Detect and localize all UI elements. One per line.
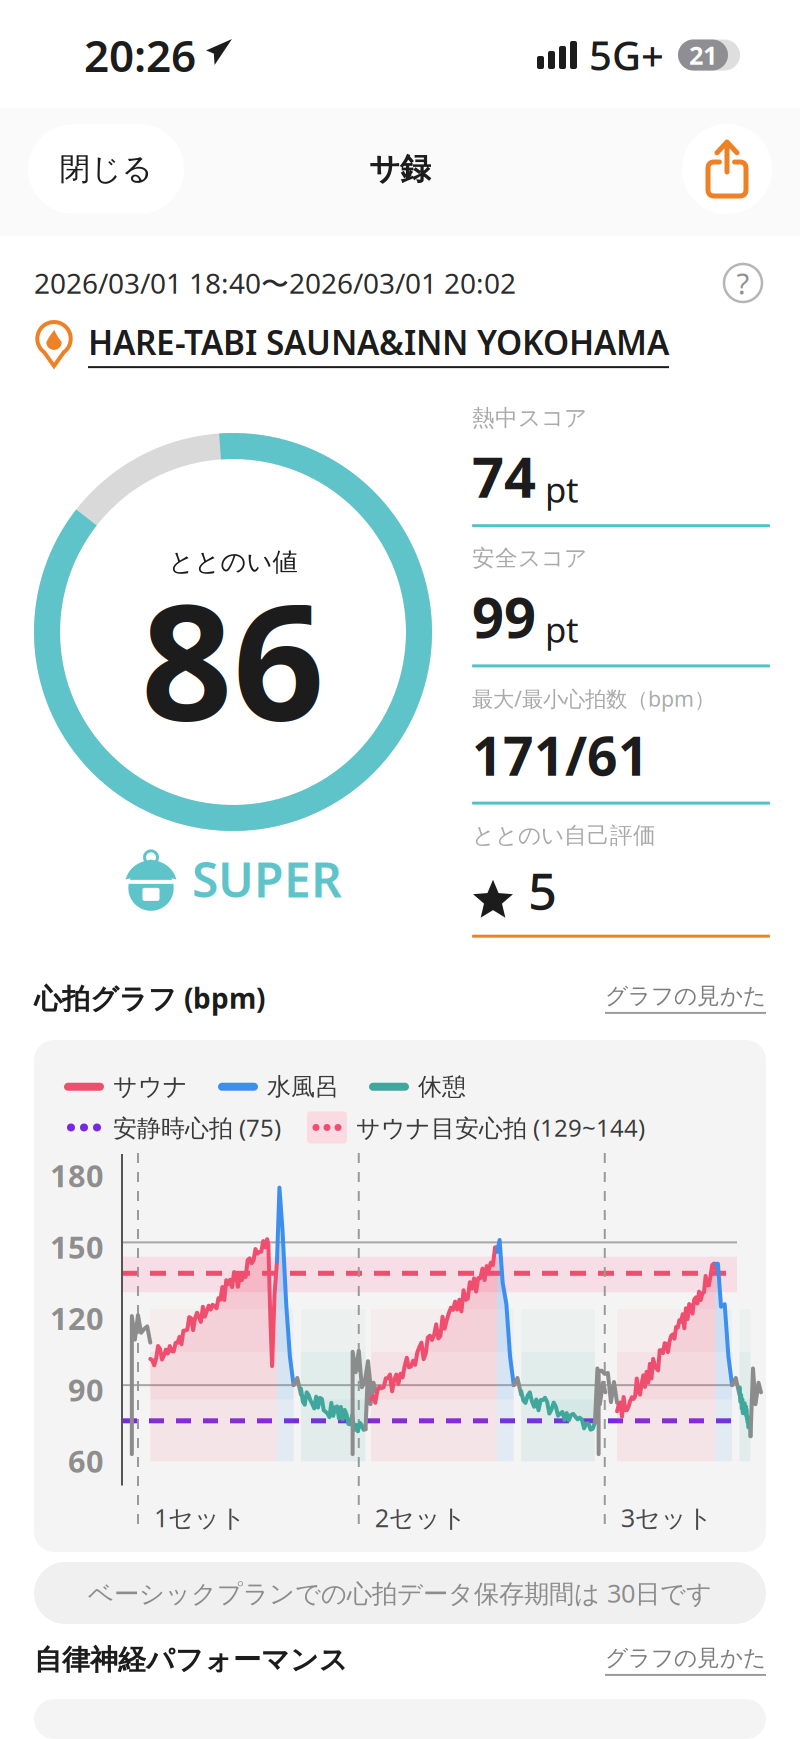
button[interactable]: グラフの見かた [605, 1644, 766, 1676]
button[interactable]: Share [682, 124, 772, 214]
staticText: 60 [68, 1440, 104, 1481]
staticText: 171/61 [472, 720, 649, 790]
staticText: pt [545, 466, 579, 512]
staticText: 180 [50, 1155, 104, 1196]
staticText: グラフの見かた [605, 1644, 766, 1672]
staticText: 2セット [375, 1500, 467, 1534]
staticText: 熱中スコア [472, 404, 587, 432]
staticText: 3セット [621, 1500, 713, 1534]
staticText: ベーシックプランでの心拍データ保存期間は 30日です [88, 1576, 712, 1610]
button[interactable]: グラフの見かた [605, 982, 766, 1014]
staticText: 120 [50, 1298, 104, 1338]
staticText: 21 [689, 38, 717, 72]
staticText: 90 [68, 1369, 104, 1410]
staticText: 1セット [154, 1500, 246, 1534]
staticText: 86 [141, 552, 325, 764]
button[interactable]: 閉じる [28, 124, 184, 213]
staticText: グラフの見かた [605, 982, 766, 1010]
staticText: 安静時心拍 (75) [113, 1111, 281, 1143]
staticText: HARE-TABI SAUNA&INN YOKOHAMA [88, 320, 669, 364]
staticText: 20:26 [84, 26, 196, 84]
staticText: サウナ [113, 1072, 188, 1101]
staticText: 心拍グラフ (bpm) [34, 979, 265, 1017]
staticText: 安全スコア [472, 544, 587, 572]
staticText: 74 [472, 439, 536, 513]
staticText: 閉じる [59, 150, 152, 188]
staticText: 150 [50, 1226, 104, 1267]
staticText: 最大/最小心拍数（bpm） [472, 684, 715, 713]
staticText: pt [545, 606, 579, 652]
staticText: 休憩 [418, 1072, 466, 1101]
staticText: 2026/03/01 18:40〜2026/03/01 20:02 [34, 264, 516, 302]
staticText: サウナ目安心拍 (129~144) [356, 1111, 645, 1143]
staticText: 水風呂 [267, 1072, 339, 1101]
staticText: 5 [528, 856, 557, 924]
staticText: ととのい値 [168, 546, 297, 577]
staticText: サ録 [369, 150, 431, 188]
staticText: ? [736, 263, 749, 302]
staticText: 5G+ [589, 28, 664, 81]
staticText: SUPER [192, 847, 342, 911]
staticText: 自律神経パフォーマンス [34, 1643, 348, 1677]
button[interactable]: Help [718, 258, 768, 308]
staticText: ととのい自己評価 [472, 822, 656, 849]
staticText: 99 [472, 579, 536, 653]
